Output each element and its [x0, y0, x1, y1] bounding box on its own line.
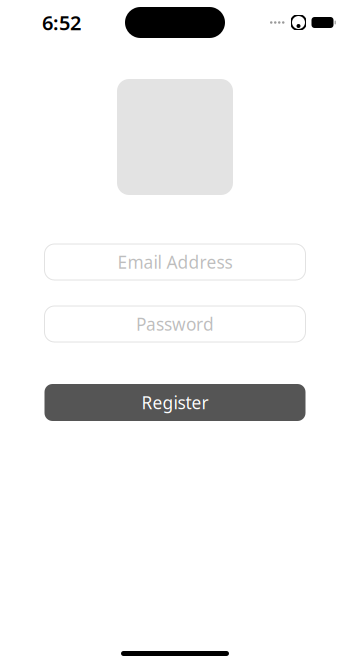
button[interactable]: Email Address — [44, 244, 305, 280]
staticText: Email Address — [117, 250, 232, 273]
button[interactable]: Register — [44, 384, 305, 421]
staticText: 6:52 — [42, 9, 81, 36]
staticText: Register — [141, 391, 208, 414]
button[interactable]: Password — [44, 306, 305, 342]
staticText: Password — [136, 312, 214, 335]
